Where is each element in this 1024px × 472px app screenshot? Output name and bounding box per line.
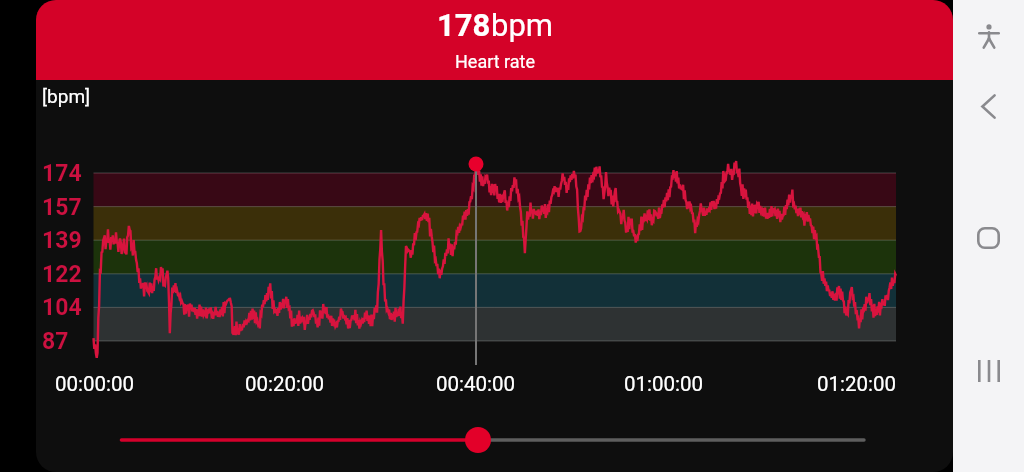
button[interactable]: 178 [36,0,953,80]
staticText: Heart rate [455,51,536,72]
staticText: 00:00:00 [55,372,135,396]
staticText: 00:20:00 [245,372,325,396]
staticText: 178 [437,7,491,43]
button[interactable]: Recent apps [953,343,1024,399]
staticText: 87 [42,328,69,354]
staticText: 139 [42,227,82,253]
staticText: 00:40:00 [436,372,516,396]
button[interactable]: Accessibility [953,8,1024,64]
staticText: bpm [491,7,553,43]
button[interactable]: Home [953,210,1024,266]
button[interactable]: Back [953,78,1024,134]
staticText: 01:00:00 [624,372,704,396]
staticText: 01:20:00 [817,372,897,396]
staticText: 104 [42,294,82,320]
staticText: [bpm] [42,85,91,107]
staticText: 157 [42,194,82,220]
staticText: 174 [42,160,82,186]
staticText: 122 [42,261,82,287]
